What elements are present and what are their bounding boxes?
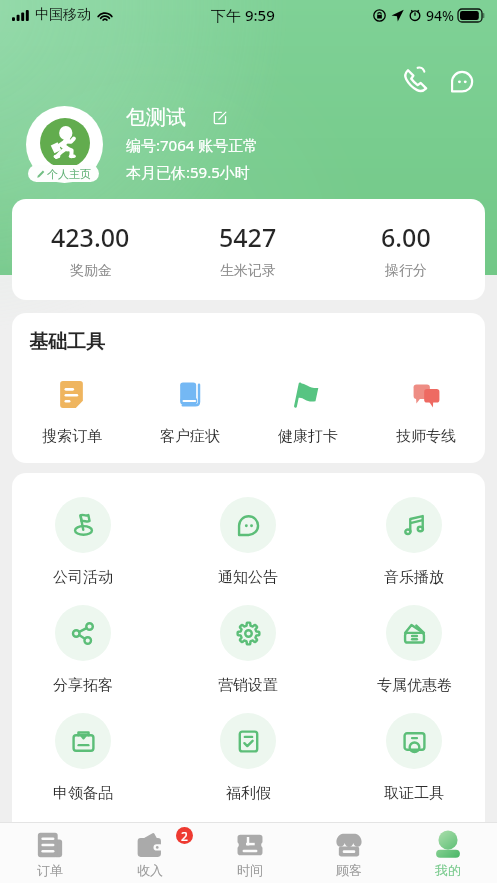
button[interactable]: 营销设置 [165, 605, 331, 695]
button[interactable]: 订单 [0, 823, 100, 883]
button[interactable]: 顾客 [299, 823, 398, 883]
staticText: 包测试 [126, 105, 186, 130]
button[interactable]: 2 [100, 823, 200, 883]
staticText: 技师专线 [396, 427, 456, 446]
button[interactable]: Call [396, 62, 434, 100]
staticText: 搜索订单 [42, 427, 102, 446]
staticText: 福利假 [226, 784, 271, 803]
staticText: 基础工具 [29, 330, 105, 354]
staticText: 通知公告 [218, 568, 278, 587]
staticText: 收入 [137, 862, 163, 878]
button[interactable]: Messages [442, 62, 480, 100]
staticText: 生米记录 [220, 262, 276, 280]
staticText: 本月已休:59.5小时 [126, 162, 250, 182]
staticText: 5427 [219, 220, 277, 254]
staticText: 分享拓客 [53, 676, 113, 695]
staticText: 2 [181, 828, 188, 844]
staticText: 申领备品 [53, 784, 113, 803]
button[interactable]: 福利假 [165, 713, 331, 803]
button[interactable]: 取证工具 [331, 713, 485, 803]
staticText: 公司活动 [53, 568, 113, 587]
button[interactable]: 我的 [398, 823, 497, 883]
staticText: 取证工具 [384, 784, 444, 803]
staticText: 时间 [237, 862, 263, 878]
staticText: 94% [426, 6, 454, 25]
button[interactable]: 健康打卡 [249, 379, 367, 446]
button[interactable]: 6.00 [327, 199, 485, 300]
staticText: 专属优惠卷 [377, 676, 452, 695]
button[interactable]: 通知公告 [165, 497, 331, 587]
staticText: 客户症状 [160, 427, 220, 446]
button[interactable]: 分享拓客 [12, 605, 165, 695]
button[interactable]: 公司活动 [12, 497, 165, 587]
staticText: 我的 [435, 862, 461, 878]
button[interactable]: Edit profile [210, 108, 230, 128]
staticText: 操行分 [385, 262, 427, 280]
staticText: 中国移动 [35, 6, 91, 24]
button[interactable]: 搜索订单 [12, 379, 131, 446]
staticText: 音乐播放 [384, 568, 444, 587]
staticText: 订单 [37, 862, 63, 878]
button[interactable]: 5427 [169, 199, 327, 300]
button[interactable]: Avatar [26, 106, 103, 183]
staticText: 营销设置 [218, 676, 278, 695]
button[interactable]: 技师专线 [367, 379, 485, 446]
button[interactable]: 个人主页 [28, 165, 99, 182]
button[interactable]: 423.00 [12, 199, 169, 300]
button[interactable]: 时间 [200, 823, 299, 883]
staticText: 423.00 [51, 220, 130, 254]
button[interactable]: 客户症状 [131, 379, 249, 446]
staticText: 个人主页 [47, 167, 91, 181]
staticText: 6.00 [381, 220, 431, 254]
button[interactable]: 音乐播放 [331, 497, 485, 587]
staticText: 下午 9:59 [211, 5, 275, 25]
staticText: 奖励金 [70, 262, 112, 280]
staticText: 编号:7064 账号正常 [126, 135, 259, 155]
staticText: 健康打卡 [278, 427, 338, 446]
button[interactable]: 专属优惠卷 [331, 605, 485, 695]
button[interactable]: 申领备品 [12, 713, 165, 803]
staticText: 顾客 [336, 862, 362, 878]
